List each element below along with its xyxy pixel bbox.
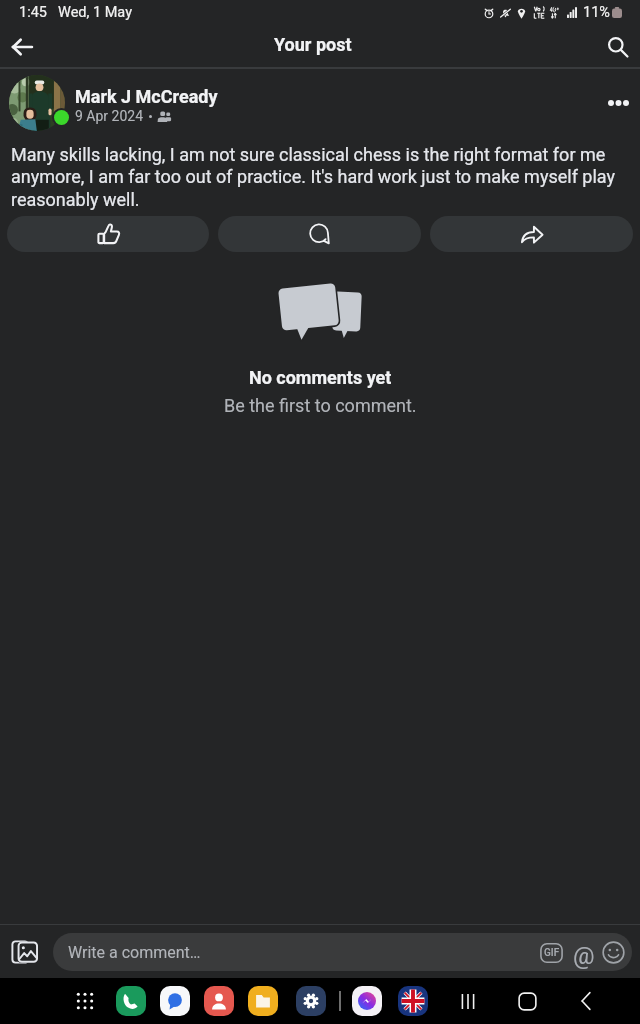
button[interactable]: Like <box>7 216 209 252</box>
button[interactable]: Back <box>4 29 40 65</box>
button[interactable]: Home <box>507 981 547 1021</box>
staticText: 1:45 <box>19 4 47 21</box>
button[interactable]: Add photo <box>6 933 44 971</box>
button[interactable]: Contacts <box>204 986 234 1016</box>
button[interactable]: Files <box>248 986 278 1016</box>
button[interactable]: Profile photo <box>9 75 65 131</box>
staticText: 9 Apr 2024 <box>75 108 144 124</box>
staticText: @ <box>573 942 595 965</box>
button[interactable]: Comment <box>218 216 421 252</box>
button[interactable]: Messages <box>160 986 190 1016</box>
button[interactable]: Phone <box>116 986 146 1016</box>
button[interactable]: GIF <box>540 942 563 964</box>
staticText: Write a comment… <box>68 943 201 962</box>
staticText: Wed, 1 May <box>58 4 133 21</box>
button[interactable]: Settings <box>296 986 326 1016</box>
staticText: Your post <box>274 34 352 55</box>
button[interactable]: Back <box>566 981 606 1021</box>
staticText: No comments yet <box>249 367 392 388</box>
button[interactable]: Search <box>600 29 636 65</box>
staticText: Many skills lacking, I am not sure class… <box>11 144 629 211</box>
button[interactable]: Emoji <box>602 941 625 964</box>
staticText: Be the first to comment. <box>224 395 417 416</box>
button[interactable]: Apps <box>69 985 101 1017</box>
button[interactable]: Mention <box>572 941 595 964</box>
staticText: Mark J McCready <box>75 86 218 107</box>
button[interactable]: Recents <box>448 981 488 1021</box>
staticText: GIF <box>544 947 560 959</box>
button[interactable]: Flag <box>398 986 428 1016</box>
button[interactable]: Messenger <box>352 986 382 1016</box>
button[interactable]: Write a comment… <box>53 933 632 971</box>
staticText: 11% <box>583 4 610 21</box>
button[interactable]: More options <box>597 82 639 124</box>
button[interactable]: Share <box>430 216 633 252</box>
